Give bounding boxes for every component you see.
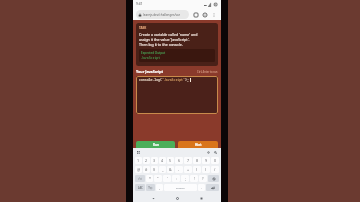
button[interactable]: _ <box>159 166 166 173</box>
staticText: 9:41 <box>136 2 143 6</box>
button[interactable]: Home <box>173 194 181 202</box>
staticText: assign it the value 'JavaScript'. <box>139 37 190 42</box>
staticText: "JavaScript" <box>162 78 185 82</box>
staticText: ) <box>205 167 207 172</box>
staticText: 9 <box>205 158 208 163</box>
staticText: & <box>169 167 172 172</box>
button[interactable]: $ <box>151 166 158 173</box>
staticText: JavaScript <box>141 56 161 60</box>
staticText: - <box>178 167 180 172</box>
staticText: / <box>214 167 216 172</box>
staticText: * <box>149 176 151 181</box>
staticText: 6 <box>178 158 181 163</box>
button[interactable]: Clipboard <box>136 150 140 154</box>
button[interactable]: : <box>172 175 180 182</box>
button[interactable]: , <box>156 184 163 191</box>
staticText: ); <box>185 78 189 82</box>
staticText: English <box>176 186 185 189</box>
staticText: Ctrl+Enter to run <box>197 70 218 74</box>
staticText: + <box>187 167 190 172</box>
staticText: $ <box>153 167 156 172</box>
button[interactable]: =\< <box>135 175 145 182</box>
button[interactable]: ' <box>163 175 171 182</box>
button[interactable]: 6 <box>175 157 183 164</box>
staticText: 1 <box>137 158 140 163</box>
button[interactable]: Back <box>149 194 157 202</box>
staticText: . <box>201 185 202 190</box>
staticText: learnjs.dev/challenges/var <box>143 13 180 17</box>
staticText: 4 <box>161 158 164 163</box>
button[interactable]: 7 <box>184 157 192 164</box>
staticText: _ <box>162 167 164 172</box>
staticText: Your JavaScript <box>136 69 164 74</box>
staticText: console.log( <box>139 78 162 82</box>
button[interactable]: # <box>143 166 150 173</box>
button[interactable]: learnjs.dev/challenges/var <box>136 10 189 19</box>
staticText: ABC <box>138 186 143 190</box>
staticText: 5 <box>169 158 172 163</box>
staticText: 7 <box>187 158 190 163</box>
button[interactable]: 3 <box>151 157 158 164</box>
button[interactable]: Run <box>136 141 175 148</box>
staticText: @ <box>137 167 141 172</box>
button[interactable]: * <box>146 175 153 182</box>
button[interactable]: " <box>154 175 162 182</box>
button[interactable]: & <box>167 166 174 173</box>
button[interactable]: 9 <box>202 157 210 164</box>
button[interactable]: Settings <box>206 150 211 155</box>
staticText: 3 <box>153 158 156 163</box>
staticText: ( <box>196 167 198 172</box>
button[interactable]: Search <box>213 150 218 155</box>
staticText: =\< <box>138 177 142 181</box>
staticText: ; <box>185 176 186 181</box>
staticText: Then log it to the console. <box>139 42 183 47</box>
button[interactable]: ! <box>190 175 198 182</box>
button[interactable]: Enter <box>206 184 219 191</box>
staticText: 2 <box>145 158 148 163</box>
staticText: Run <box>153 143 159 147</box>
button[interactable]: Hint <box>178 141 218 148</box>
staticText: 0 <box>214 158 217 163</box>
staticText: Create a variable called 'name' and <box>139 32 198 37</box>
button[interactable]: Recent apps <box>197 194 205 202</box>
button[interactable]: / <box>211 166 219 173</box>
button[interactable]: ABC <box>135 184 145 191</box>
button[interactable]: console.log( <box>136 76 218 114</box>
button[interactable]: - <box>175 166 183 173</box>
staticText: , <box>159 185 160 190</box>
button[interactable]: 5 <box>167 157 174 164</box>
staticText: # <box>145 167 148 172</box>
staticText: : <box>176 176 177 181</box>
button[interactable]: ) <box>202 166 210 173</box>
button[interactable]: ( <box>193 166 201 173</box>
staticText: TASK <box>139 26 147 30</box>
button[interactable]: ? <box>199 175 207 182</box>
button[interactable]: Account <box>200 10 209 19</box>
staticText: Expected Output <box>141 51 166 55</box>
button[interactable]: More options <box>209 10 218 19</box>
button[interactable]: 2 <box>143 157 150 164</box>
button[interactable]: Space <box>164 184 197 191</box>
staticText: ! <box>194 176 195 181</box>
button[interactable]: 8 <box>193 157 201 164</box>
button[interactable]: @ <box>135 166 142 173</box>
button[interactable]: !?☺ <box>146 184 155 191</box>
button[interactable]: 4 <box>159 157 166 164</box>
staticText: !?☺ <box>148 186 153 190</box>
staticText: " <box>157 176 159 181</box>
button[interactable]: 0 <box>211 157 219 164</box>
staticText: 8 <box>196 158 199 163</box>
button[interactable]: . <box>198 184 205 191</box>
staticText: ? <box>202 176 204 181</box>
button[interactable]: Tabs <box>191 10 200 19</box>
button[interactable]: Backspace <box>208 175 219 182</box>
button[interactable]: ; <box>181 175 189 182</box>
staticText: ' <box>167 176 168 181</box>
staticText: Hint <box>195 143 202 147</box>
button[interactable]: + <box>184 166 192 173</box>
button[interactable]: 1 <box>135 157 142 164</box>
